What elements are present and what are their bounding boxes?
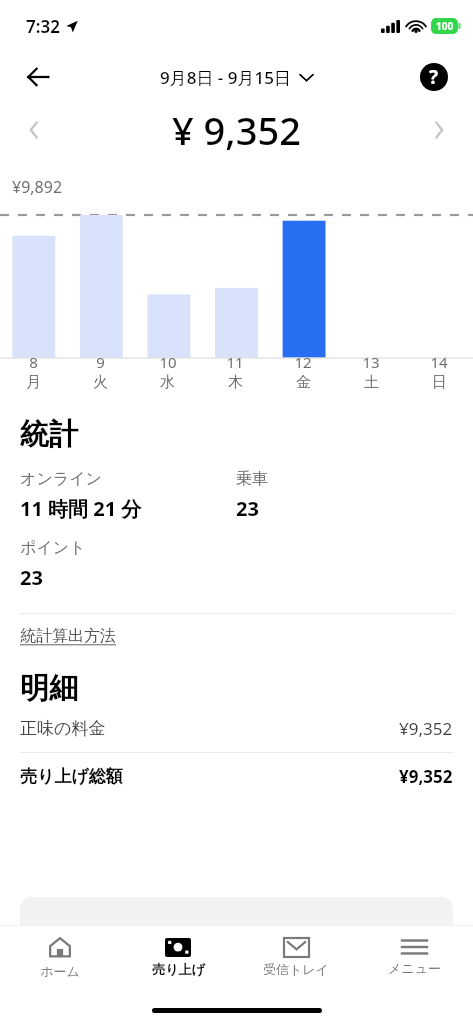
staticText: 10 bbox=[159, 352, 177, 372]
staticText: 統計 bbox=[20, 416, 78, 453]
staticText: 23 bbox=[20, 564, 43, 591]
staticText: ¥ 9,352 bbox=[172, 104, 301, 156]
staticText: 月 bbox=[26, 373, 41, 392]
staticText: 9 bbox=[96, 352, 105, 372]
staticText: 8 bbox=[29, 352, 38, 372]
staticText: 土 bbox=[364, 373, 379, 392]
staticText: ¥9,352 bbox=[399, 765, 453, 788]
staticText: 100 bbox=[436, 19, 454, 33]
staticText: 受信トレイ bbox=[263, 961, 329, 977]
staticText: 12 bbox=[294, 352, 312, 372]
staticText: ポイント bbox=[20, 538, 86, 558]
button[interactable]: Back bbox=[16, 55, 60, 99]
staticText: 統計算出方法 bbox=[20, 626, 116, 646]
staticText: 水 bbox=[160, 373, 175, 392]
staticText: 正味の料金 bbox=[20, 718, 399, 739]
staticText: 11 時間 21 分 bbox=[20, 495, 142, 522]
staticText: 7:32 bbox=[26, 15, 60, 38]
button[interactable]: 統計算出方法 bbox=[20, 626, 116, 646]
staticText: 売り上げ bbox=[152, 961, 205, 977]
staticText: 13 bbox=[362, 352, 380, 372]
staticText: 金 bbox=[296, 373, 311, 392]
staticText: 火 bbox=[93, 373, 108, 392]
staticText: 14 bbox=[430, 352, 448, 372]
staticText: ホーム bbox=[40, 963, 80, 979]
staticText: オンライン bbox=[20, 469, 102, 489]
button[interactable]: Next week bbox=[421, 112, 457, 148]
staticText: 日 bbox=[432, 373, 447, 392]
button[interactable]: ホーム bbox=[0, 926, 119, 988]
button[interactable]: 売り上げ bbox=[119, 926, 237, 988]
staticText: ¥9,352 bbox=[399, 717, 453, 740]
staticText: ? bbox=[429, 64, 439, 90]
button[interactable]: Previous week bbox=[16, 112, 52, 148]
button[interactable]: 受信トレイ bbox=[237, 926, 355, 988]
staticText: 9月8日 - 9月15日 bbox=[160, 66, 291, 89]
staticText: 乗車 bbox=[236, 469, 268, 489]
staticText: メニュー bbox=[388, 960, 441, 976]
button[interactable]: メニュー bbox=[355, 926, 473, 988]
staticText: ¥9,892 bbox=[12, 176, 63, 198]
button[interactable]: Help bbox=[417, 60, 451, 94]
staticText: 売り上げ総額 bbox=[20, 766, 399, 787]
staticText: 木 bbox=[228, 373, 243, 392]
staticText: 明細 bbox=[20, 670, 78, 707]
staticText: 23 bbox=[236, 495, 259, 522]
button[interactable]: 9月8日 - 9月15日 bbox=[160, 66, 313, 89]
staticText: 11 bbox=[226, 352, 244, 372]
